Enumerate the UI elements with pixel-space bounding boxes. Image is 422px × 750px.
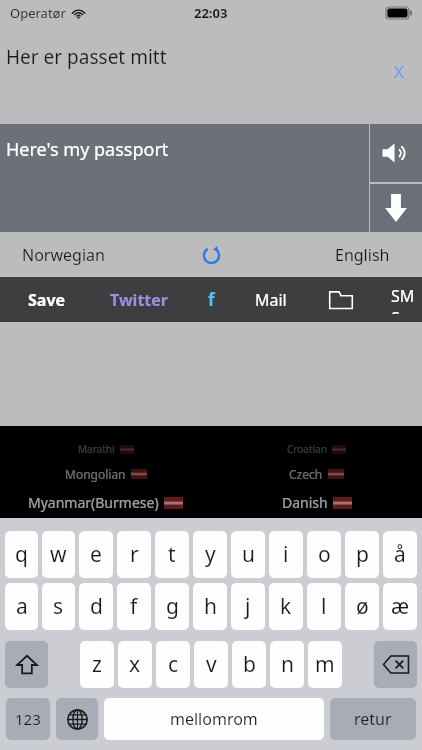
- button[interactable]: Folder: [323, 284, 359, 315]
- staticText: f: [208, 288, 215, 311]
- staticText: y: [205, 540, 216, 569]
- staticText: s: [53, 592, 64, 621]
- staticText: Marathi: [78, 442, 115, 456]
- staticText: l: [321, 592, 327, 621]
- button[interactable]: w: [42, 531, 75, 578]
- staticText: t: [168, 540, 176, 569]
- button[interactable]: Swap languages: [194, 238, 228, 272]
- button[interactable]: q: [5, 531, 38, 578]
- staticText: n: [281, 650, 294, 679]
- staticText: a: [16, 592, 28, 621]
- staticText: English: [335, 244, 390, 266]
- staticText: i: [283, 540, 289, 569]
- button[interactable]: Mail: [249, 281, 293, 319]
- button[interactable]: Save: [22, 281, 72, 319]
- button[interactable]: i: [269, 531, 303, 578]
- button[interactable]: b: [232, 641, 266, 688]
- button[interactable]: s: [42, 583, 75, 630]
- staticText: Czech: [289, 466, 323, 482]
- staticText: o: [318, 540, 331, 569]
- button[interactable]: Speak: [370, 124, 422, 182]
- staticText: SMS: [391, 285, 416, 314]
- staticText: f: [130, 592, 138, 621]
- staticText: æ: [391, 592, 410, 621]
- button[interactable]: k: [269, 583, 303, 630]
- button[interactable]: ø: [345, 583, 379, 630]
- button[interactable]: j: [231, 583, 265, 630]
- button[interactable]: u: [231, 531, 265, 578]
- button[interactable]: l: [307, 583, 341, 630]
- button[interactable]: Facebook: [198, 280, 225, 319]
- staticText: x: [129, 650, 141, 679]
- button[interactable]: v: [194, 641, 228, 688]
- button[interactable]: mellomrom: [104, 698, 324, 740]
- staticText: b: [243, 650, 256, 679]
- staticText: Norwegian: [22, 244, 105, 266]
- staticText: å: [394, 540, 406, 569]
- button[interactable]: Twitter: [104, 281, 174, 319]
- button[interactable]: 123: [6, 698, 50, 740]
- button[interactable]: Download: [370, 184, 422, 232]
- button[interactable]: m: [308, 641, 342, 688]
- staticText: Mongolian: [65, 466, 126, 482]
- button[interactable]: retur: [330, 698, 416, 740]
- button[interactable]: Change keyboard: [56, 698, 98, 740]
- button[interactable]: n: [270, 641, 304, 688]
- staticText: retur: [354, 708, 392, 730]
- button[interactable]: o: [307, 531, 341, 578]
- button[interactable]: r: [117, 531, 151, 578]
- button[interactable]: SMS: [385, 277, 422, 322]
- staticText: c: [168, 650, 179, 679]
- button[interactable]: Here's my passport: [0, 124, 369, 232]
- button[interactable]: e: [79, 531, 113, 578]
- button[interactable]: English: [323, 238, 422, 272]
- staticText: m: [315, 650, 335, 679]
- staticText: q: [15, 540, 28, 569]
- button[interactable]: å: [383, 531, 417, 578]
- button[interactable]: z: [80, 641, 114, 688]
- button[interactable]: Clear: [384, 56, 414, 86]
- staticText: p: [356, 540, 369, 569]
- button[interactable]: t: [155, 531, 189, 578]
- staticText: Save: [28, 289, 66, 311]
- button[interactable]: g: [155, 583, 189, 630]
- staticText: g: [166, 592, 179, 621]
- staticText: mellomrom: [170, 708, 258, 730]
- button[interactable]: Norwegian: [0, 238, 117, 272]
- staticText: 22:03: [194, 4, 228, 22]
- button[interactable]: Backspace: [374, 641, 417, 688]
- staticText: X: [394, 60, 404, 83]
- button[interactable]: æ: [383, 583, 417, 630]
- staticText: Her er passet mitt: [6, 44, 167, 70]
- button[interactable]: a: [5, 583, 38, 630]
- button[interactable]: y: [193, 531, 227, 578]
- staticText: k: [280, 592, 292, 621]
- staticText: w: [50, 540, 67, 569]
- staticText: d: [90, 592, 103, 621]
- staticText: Danish: [282, 493, 328, 512]
- staticText: v: [206, 650, 217, 679]
- staticText: Mail: [255, 289, 287, 311]
- button[interactable]: h: [193, 583, 227, 630]
- staticText: ø: [356, 592, 369, 621]
- staticText: Operatør: [10, 4, 66, 22]
- button[interactable]: f: [117, 583, 151, 630]
- staticText: j: [245, 592, 251, 621]
- staticText: r: [130, 540, 139, 569]
- button[interactable]: Shift: [5, 641, 48, 688]
- button[interactable]: d: [79, 583, 113, 630]
- staticText: u: [242, 540, 255, 569]
- button[interactable]: p: [345, 531, 379, 578]
- staticText: h: [204, 592, 217, 621]
- staticText: e: [90, 540, 102, 569]
- staticText: 123: [15, 709, 41, 729]
- button[interactable]: c: [156, 641, 190, 688]
- staticText: Twitter: [110, 289, 168, 311]
- staticText: Here's my passport: [6, 137, 169, 162]
- button[interactable]: x: [118, 641, 152, 688]
- staticText: Myanmar(Burmese): [28, 493, 159, 512]
- staticText: z: [92, 650, 102, 679]
- staticText: Croatian: [287, 442, 327, 456]
